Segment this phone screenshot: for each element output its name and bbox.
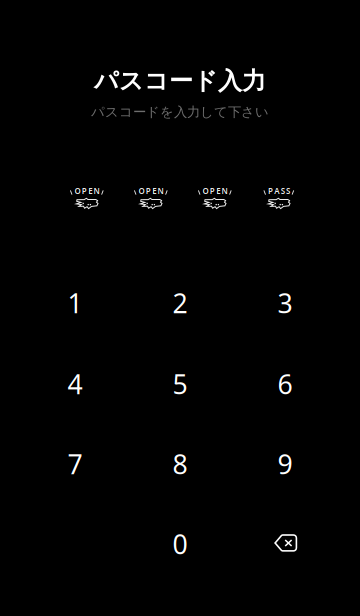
button[interactable]: 9 <box>235 433 335 495</box>
staticText: 7 <box>67 446 82 482</box>
staticText: 1 <box>67 285 82 321</box>
staticText: P <box>82 186 87 196</box>
staticText: 6 <box>277 366 292 402</box>
staticText: 8 <box>172 446 187 482</box>
staticText: O <box>74 186 80 196</box>
staticText: 0 <box>172 526 187 562</box>
staticText: P <box>210 186 215 196</box>
staticText: N <box>158 186 164 196</box>
staticText: P <box>268 186 273 196</box>
staticText: P <box>146 186 151 196</box>
staticText: 4 <box>67 366 82 402</box>
staticText: E <box>152 186 156 196</box>
button[interactable]: Delete <box>236 512 336 574</box>
staticText: 9 <box>277 446 292 482</box>
staticText: パスコードを入力して下さい <box>91 104 269 120</box>
button[interactable]: 7 <box>25 433 125 495</box>
staticText: 5 <box>172 366 187 402</box>
staticText: S <box>281 186 285 196</box>
staticText: O <box>138 186 144 196</box>
staticText: O <box>202 186 208 196</box>
staticText: N <box>222 186 228 196</box>
staticText: 2 <box>172 285 187 321</box>
staticText: E <box>216 186 220 196</box>
button[interactable]: 0 <box>130 513 230 575</box>
button[interactable]: 3 <box>235 272 335 334</box>
staticText: 3 <box>277 285 292 321</box>
button[interactable]: 2 <box>130 272 230 334</box>
staticText: パスコード入力 <box>94 66 266 96</box>
button[interactable]: 6 <box>235 353 335 415</box>
button[interactable]: 4 <box>25 353 125 415</box>
button[interactable]: 5 <box>130 353 230 415</box>
staticText: S <box>286 186 290 196</box>
button[interactable]: 8 <box>130 433 230 495</box>
button[interactable]: 1 <box>25 272 125 334</box>
staticText: E <box>88 186 92 196</box>
staticText: A <box>274 186 279 196</box>
staticText: N <box>94 186 100 196</box>
